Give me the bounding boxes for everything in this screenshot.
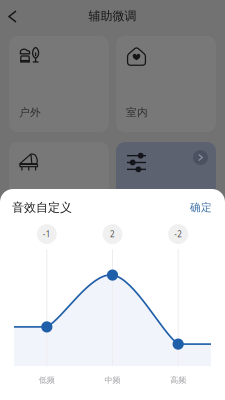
button[interactable]: 户外 [9, 36, 109, 132]
staticText: 中频 [104, 375, 120, 385]
button[interactable]: 室内 [116, 36, 216, 132]
button[interactable]: -1 [37, 224, 57, 244]
button[interactable]: 2 [102, 224, 122, 244]
button[interactable]: 确定 [180, 198, 212, 217]
staticText: 高频 [170, 375, 186, 385]
staticText: 户外 [19, 106, 41, 119]
button[interactable] [9, 142, 109, 238]
button[interactable] [116, 142, 216, 238]
staticText: -2 [174, 229, 182, 239]
staticText: 音效自定义 [12, 200, 72, 215]
staticText: 室内 [126, 106, 148, 119]
button[interactable]: Back [0, 0, 25, 28]
staticText: 辅助微调 [88, 9, 136, 23]
staticText: 低频 [39, 375, 55, 385]
staticText: 确定 [190, 201, 212, 214]
button[interactable]: -2 [168, 224, 188, 244]
staticText: 2 [110, 229, 115, 239]
staticText: -1 [43, 229, 51, 239]
